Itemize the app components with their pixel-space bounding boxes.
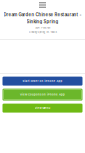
staticText: Sinking Spring	[26, 19, 58, 24]
staticText: Start Order on iPhone App	[22, 79, 62, 83]
staticText: View Menu	[34, 106, 50, 110]
button[interactable]: Menu	[31, 2, 53, 8]
button[interactable]: View Coupons on iPhone App	[2, 89, 82, 101]
staticText: Sinking Spring, PA 19608	[28, 31, 56, 34]
staticText: View Coupons on iPhone App	[20, 93, 65, 96]
button[interactable]: Start Order on iPhone App	[2, 77, 82, 86]
staticText: 3564 Penn Ave	[35, 26, 50, 29]
staticText: Dream Garden Chinese Restaurant -	[3, 12, 81, 17]
button[interactable]: View Menu	[2, 104, 82, 113]
